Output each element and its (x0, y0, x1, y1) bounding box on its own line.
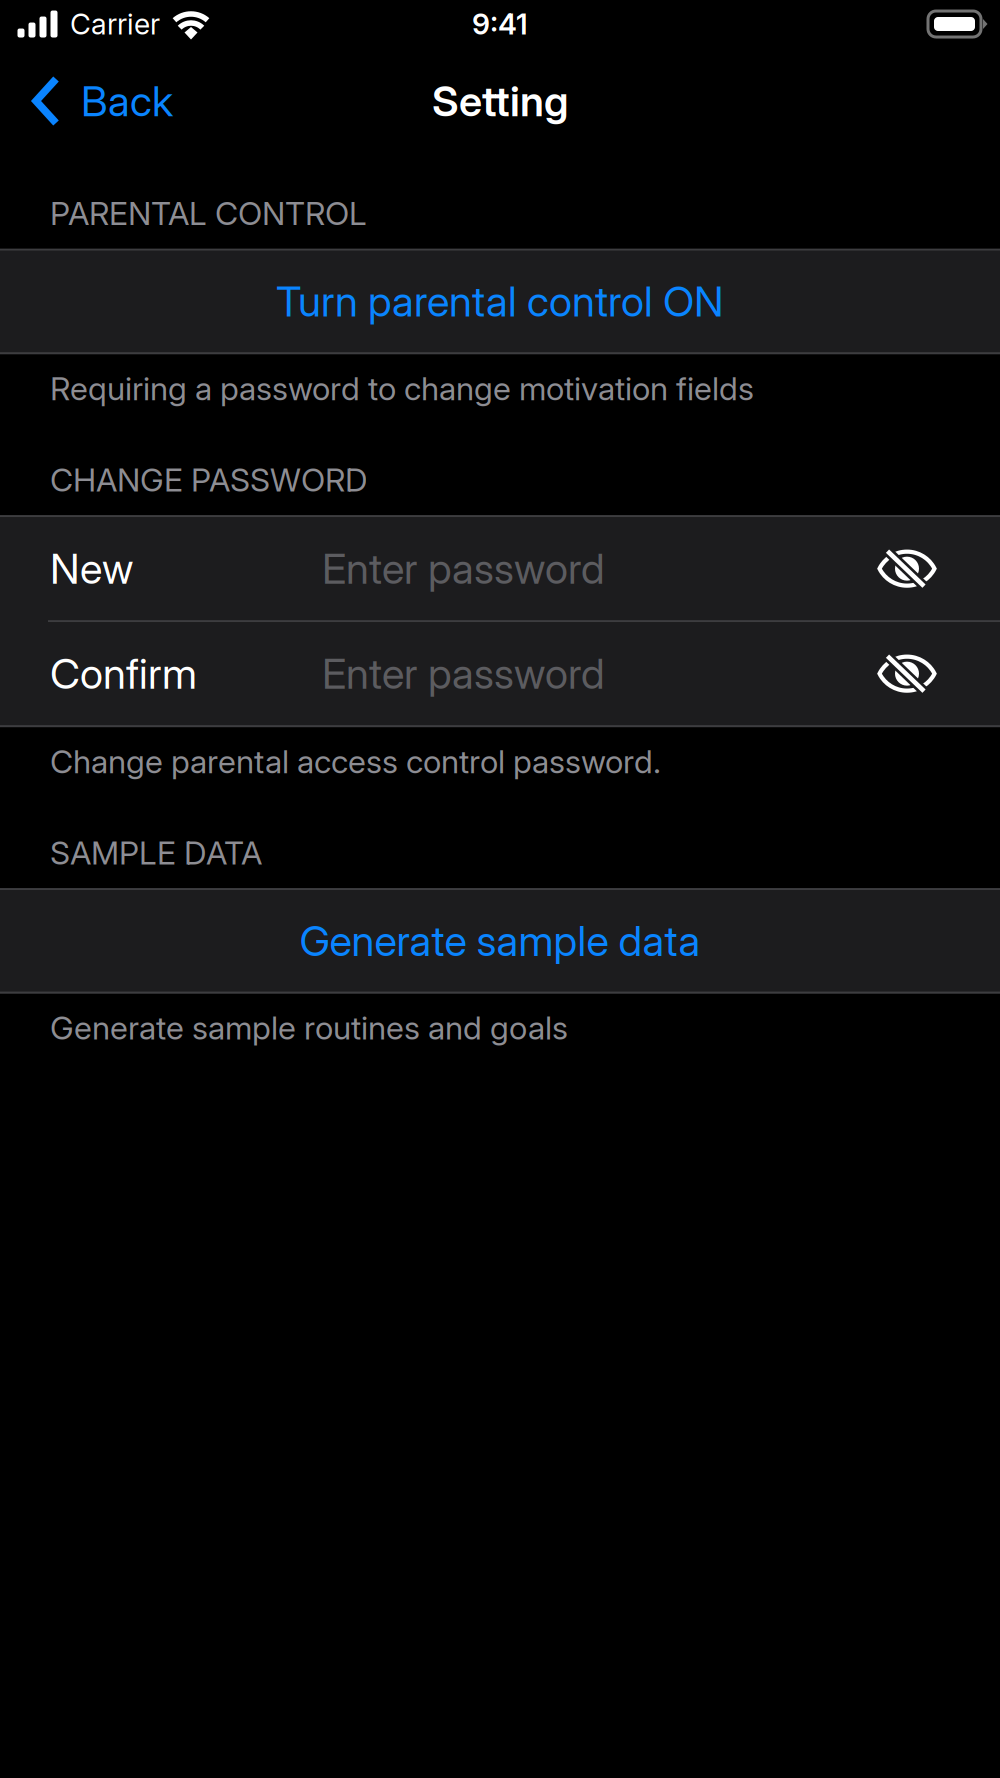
staticText: Turn parental control ON (276, 276, 724, 327)
button[interactable]: Turn parental control ON (0, 251, 1000, 352)
staticText: PARENTAL CONTROL (50, 194, 367, 233)
button[interactable]: Back (0, 48, 191, 154)
button[interactable]: Show Confirm password (855, 633, 935, 715)
staticText: Confirm (50, 648, 197, 699)
staticText: Enter password (322, 648, 605, 699)
staticText: Change parental access control password. (50, 742, 661, 781)
staticText: Requiring a password to change motivatio… (50, 369, 754, 408)
staticText: Generate sample data (299, 916, 700, 966)
button[interactable]: Show New password (855, 528, 935, 610)
staticText: Carrier (70, 7, 160, 41)
staticText: New (50, 543, 133, 594)
button[interactable]: Generate sample data (0, 890, 1000, 992)
staticText: Setting (432, 76, 568, 126)
staticText: Back (81, 76, 173, 126)
staticText: Enter password (322, 543, 605, 594)
staticText: SAMPLE DATA (50, 833, 262, 872)
staticText: CHANGE PASSWORD (50, 460, 368, 499)
staticText: 9:41 (472, 7, 528, 41)
staticText: Generate sample routines and goals (50, 1009, 568, 1047)
